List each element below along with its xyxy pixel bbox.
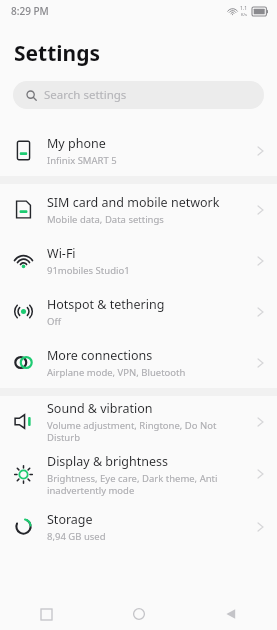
button[interactable]: Wi-Fi [0,235,277,286]
button[interactable]: Hotspot & tethering [0,286,277,337]
button[interactable]: Sound & vibration [0,396,277,447]
button[interactable]: Storage [0,501,277,552]
button[interactable]: Recents [0,598,93,630]
staticText: Storage [47,511,93,528]
staticText: My phone [47,135,106,152]
staticText: K/s [241,12,247,17]
staticText: More connections [47,347,153,364]
staticText: Settings [14,39,101,68]
staticText: Search settings [44,87,127,103]
button[interactable]: More connections [0,337,277,388]
staticText: Volume adjustment, Ringtone, Do Not Dist… [47,419,251,443]
staticText: 1.1 [240,5,248,12]
staticText: Brightness, Eye care, Dark theme, Anti i… [47,472,251,496]
staticText: 91mobiles Studio1 [47,264,130,277]
staticText: Infinix SMART 5 [47,154,117,167]
button[interactable]: Search settings [13,81,264,109]
staticText: Airplane mode, VPN, Bluetooth [47,366,186,379]
staticText: Mobile data, Data settings [47,213,164,226]
button[interactable]: Back [185,598,277,630]
staticText: Sound & vibration [47,400,153,417]
staticText: SIM card and mobile network [47,194,220,211]
staticText: 8:29 PM [11,4,49,18]
staticText: Display & brightness [47,453,169,470]
staticText: Off [47,315,61,328]
staticText: Hotspot & tethering [47,296,165,313]
button[interactable]: Home [93,598,185,630]
staticText: Wi-Fi [47,245,76,262]
staticText: 8,94 GB used [47,530,106,543]
button[interactable]: SIM card and mobile network [0,184,277,235]
button[interactable]: My phone [0,125,277,176]
button[interactable]: Display & brightness [0,447,277,501]
